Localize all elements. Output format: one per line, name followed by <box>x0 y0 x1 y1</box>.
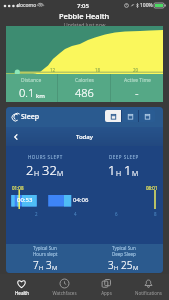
staticText: Notifications <box>135 290 162 296</box>
button[interactable]: HOURS SLEPT <box>6 154 84 179</box>
staticText: 7:05 <box>77 2 89 10</box>
staticText: 486 <box>75 85 94 100</box>
staticText: 08:01 <box>146 185 158 191</box>
staticText: M <box>132 169 139 179</box>
staticText: Deep Sleep <box>112 251 136 257</box>
staticText: Typical Sun <box>33 245 57 251</box>
staticText: Pebble Health <box>59 11 110 21</box>
staticText: Sleep <box>21 112 40 122</box>
staticText: H <box>116 169 122 179</box>
button[interactable]: Other view <box>139 110 155 122</box>
staticText: Watchfaces <box>52 290 77 296</box>
staticText: Calories <box>75 77 94 84</box>
staticText: 20 <box>133 67 139 73</box>
staticText: 18 <box>95 67 101 73</box>
button[interactable]: Previous day <box>10 131 22 143</box>
staticText: 32 <box>42 161 57 179</box>
staticText: 00:53 <box>17 196 33 204</box>
button[interactable]: Calories <box>58 74 110 102</box>
staticText: M <box>57 169 64 179</box>
button[interactable]: DEEP SLEEP <box>84 154 163 179</box>
staticText: 2 <box>35 211 38 217</box>
button[interactable]: Active Time <box>111 74 163 102</box>
button[interactable]: Typical Sun <box>6 244 84 273</box>
staticText: Typical Sun <box>112 245 136 251</box>
button[interactable]: Typical Sun <box>84 244 163 273</box>
staticText: - <box>135 85 139 100</box>
staticText: 8 <box>154 211 157 217</box>
staticText: 2 <box>26 161 34 179</box>
button[interactable]: Watchfaces <box>43 274 85 300</box>
button[interactable]: Apps <box>85 274 127 300</box>
button[interactable]: Other view <box>122 110 138 122</box>
staticText: 3 <box>46 258 52 272</box>
staticText: 01:08 <box>12 185 24 191</box>
staticText: M <box>52 264 58 272</box>
staticText: H <box>114 264 119 272</box>
staticText: km <box>36 92 45 100</box>
staticText: H <box>39 264 44 272</box>
staticText: 3 <box>108 258 114 272</box>
button[interactable]: Distance <box>6 74 57 102</box>
staticText: 12 <box>50 67 56 73</box>
staticText: Updated Just now <box>64 22 106 29</box>
button[interactable]: Health <box>0 274 43 300</box>
staticText: Apps <box>101 290 112 296</box>
staticText: 1 <box>124 161 132 179</box>
staticText: 25 <box>121 258 133 272</box>
staticText: 6 <box>115 211 118 217</box>
staticText: 4 <box>74 211 77 217</box>
staticText: 04:06 <box>73 196 89 204</box>
staticText: Hours slept <box>33 251 58 257</box>
staticText: M <box>133 264 139 272</box>
staticText: 0.1 <box>19 85 35 100</box>
staticText: 1 <box>108 161 116 179</box>
staticText: 7 <box>33 258 39 272</box>
button[interactable]: Notifications <box>127 274 169 300</box>
staticText: docomo <box>17 2 37 9</box>
staticText: 100% <box>140 2 153 9</box>
staticText: DEEP SLEEP <box>109 154 139 160</box>
staticText: Health <box>15 290 29 296</box>
staticText: Today <box>76 133 93 141</box>
staticText: Distance <box>21 77 42 84</box>
staticText: H <box>34 169 40 179</box>
staticText: HOURS SLEPT <box>28 154 63 160</box>
button[interactable]: Day view <box>105 110 121 122</box>
staticText: Active Time <box>124 77 151 84</box>
